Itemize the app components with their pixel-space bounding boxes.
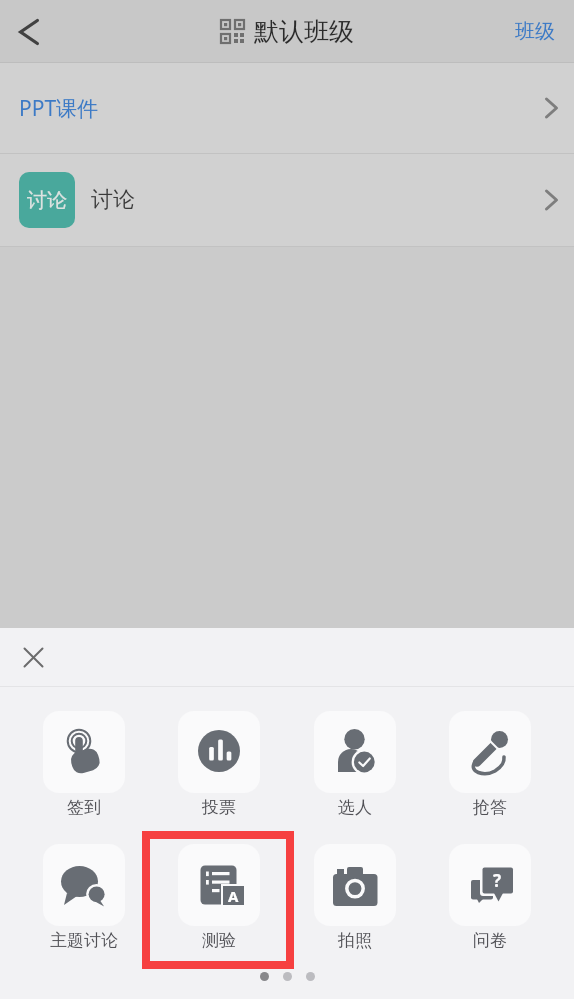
button[interactable]: 讨论 (0, 154, 574, 246)
button[interactable] (24, 648, 43, 667)
button[interactable] (43, 844, 125, 926)
button[interactable]: 班级 (515, 19, 555, 44)
staticText: 主题讨论 (50, 930, 118, 951)
staticText: 测验 (202, 930, 236, 951)
button[interactable]: ? (449, 844, 531, 926)
staticText: 选人 (338, 797, 372, 818)
staticText: 讨论 (27, 188, 67, 213)
button[interactable] (178, 711, 260, 793)
button[interactable] (449, 711, 531, 793)
staticText: 拍照 (338, 930, 372, 951)
staticText: ? (493, 869, 502, 892)
button[interactable] (43, 711, 125, 793)
staticText: 班级 (515, 19, 555, 44)
button[interactable]: PPT课件 (0, 63, 574, 153)
staticText: 投票 (202, 797, 236, 818)
staticText: PPT课件 (19, 94, 99, 123)
staticText: 默认班级 (254, 16, 354, 47)
staticText: A (228, 886, 239, 905)
button[interactable] (314, 711, 396, 793)
button[interactable] (17, 20, 41, 44)
staticText: 签到 (67, 797, 101, 818)
button[interactable]: A (178, 844, 260, 926)
staticText: 抢答 (473, 797, 507, 818)
button[interactable] (314, 844, 396, 926)
staticText: 讨论 (91, 186, 135, 214)
staticText: 问卷 (473, 930, 507, 951)
